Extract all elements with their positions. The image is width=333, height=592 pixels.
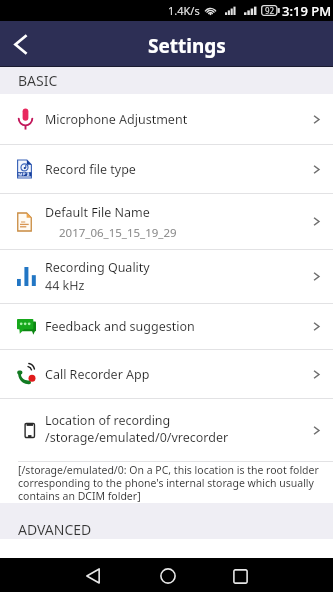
- staticText: Microphone Adjustment: [45, 111, 188, 128]
- staticText: 2017_06_15_15_19_29: [59, 225, 177, 241]
- staticText: Location of recording: [45, 412, 171, 429]
- staticText: /storage/emulated/0/vrecorder: [45, 429, 229, 446]
- button[interactable]: Location of recording: [0, 399, 333, 461]
- button[interactable]: Default File Name: [0, 194, 333, 249]
- button[interactable]: Microphone Adjustment: [0, 94, 333, 144]
- button[interactable]: Back: [70, 559, 115, 592]
- button[interactable]: Home: [145, 559, 190, 592]
- button[interactable]: Recording Quality: [0, 250, 333, 303]
- staticText: 1.4K/s: [168, 3, 200, 18]
- staticText: Feedback and suggestion: [45, 318, 195, 335]
- staticText: Recording Quality: [45, 259, 150, 276]
- staticText: BASIC: [18, 71, 58, 90]
- staticText: Settings: [148, 33, 226, 59]
- button[interactable]: Record file type: [0, 145, 333, 193]
- staticText: 44 kHz: [45, 277, 85, 294]
- staticText: Record file type: [45, 161, 136, 178]
- staticText: Default File Name: [45, 204, 150, 221]
- button[interactable]: Feedback and suggestion: [0, 304, 333, 349]
- staticText: 92: [265, 5, 275, 16]
- staticText: ADVANCED: [18, 520, 92, 539]
- staticText: Call Recorder App: [45, 366, 150, 383]
- staticText: [/storage/emulated/0: On a PC, this loca…: [18, 463, 325, 503]
- button[interactable]: Call Recorder App: [0, 350, 333, 398]
- staticText: 3:19 PM: [282, 2, 332, 20]
- button[interactable]: Back: [0, 21, 41, 66]
- button[interactable]: Recent apps: [218, 559, 263, 592]
